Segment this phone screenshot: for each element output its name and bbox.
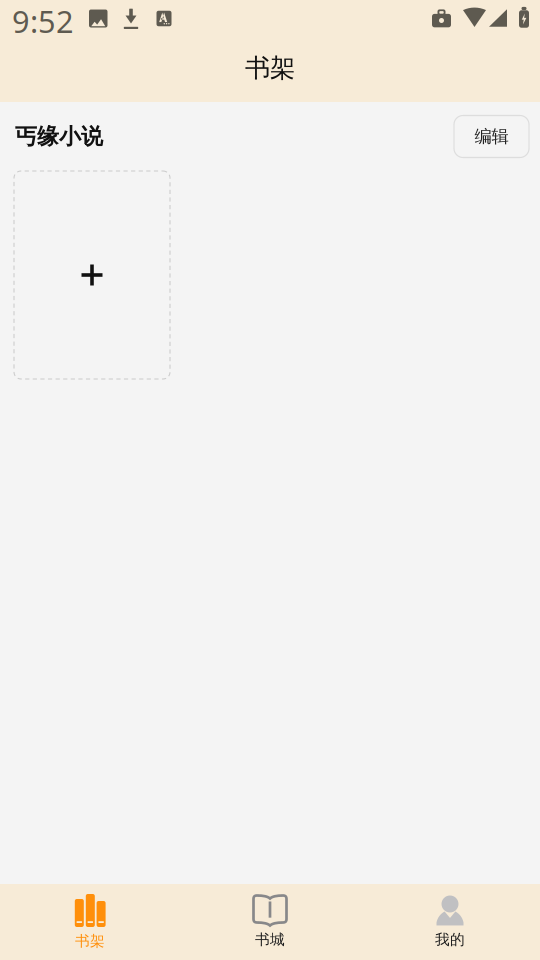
staticText: 9:52 bbox=[12, 1, 74, 41]
staticText: 书城 bbox=[255, 930, 285, 948]
button[interactable]: 书城 bbox=[180, 884, 360, 960]
button[interactable]: 我的 bbox=[360, 884, 540, 960]
button[interactable]: 书架 bbox=[0, 884, 180, 960]
staticText: 书架 bbox=[245, 52, 295, 83]
staticText: 编辑 bbox=[474, 126, 508, 147]
staticText: 我的 bbox=[435, 930, 465, 948]
button[interactable]: 编辑 bbox=[454, 115, 529, 157]
button[interactable]: 添加书籍 bbox=[14, 171, 170, 379]
staticText: 书架 bbox=[75, 932, 105, 950]
staticText: 丐缘小说 bbox=[15, 123, 103, 150]
